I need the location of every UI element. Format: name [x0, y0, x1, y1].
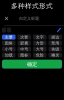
button[interactable]: 中号 — [17, 47, 31, 52]
button[interactable]: 图标 — [17, 53, 31, 58]
staticText: 加载 — [5, 53, 13, 57]
staticText: 确定 — [27, 61, 37, 67]
button[interactable]: Edit — [56, 27, 62, 33]
staticText: 禁用 — [51, 41, 59, 45]
staticText: 危险 — [36, 53, 44, 57]
button[interactable]: 大号 — [33, 47, 46, 52]
button[interactable]: 小号 — [2, 47, 15, 52]
button[interactable]: 描边 — [48, 35, 62, 40]
staticText: 文字 — [36, 35, 44, 39]
staticText: 次要 — [20, 35, 28, 39]
button[interactable]: 圆角 — [2, 41, 15, 46]
staticText: 方形 — [36, 41, 44, 45]
button[interactable]: Tag — [7, 28, 11, 33]
staticText: 大号 — [36, 47, 44, 51]
staticText: 胶囊 — [20, 41, 28, 45]
staticText: 中号 — [20, 47, 28, 51]
button[interactable]: 加载 — [2, 53, 15, 58]
staticText: 多种样式形式 — [11, 2, 53, 10]
button[interactable]: 确定 — [2, 60, 62, 69]
button[interactable]: 胶囊 — [17, 41, 31, 46]
staticText: 小号 — [5, 47, 13, 51]
staticText: 幽灵 — [51, 53, 59, 57]
staticText: 块级 — [51, 47, 59, 51]
staticText: 自定义标题 — [19, 16, 39, 21]
staticText: 圆角 — [5, 41, 13, 45]
button[interactable]: Close — [4, 16, 9, 21]
button[interactable]: 主要 — [2, 35, 15, 40]
button[interactable]: 块级 — [48, 47, 62, 52]
staticText: 图标 — [20, 53, 28, 57]
button[interactable]: 禁用 — [48, 41, 62, 46]
button[interactable]: 文字 — [33, 35, 46, 40]
button[interactable]: 次要 — [17, 35, 31, 40]
staticText: 主要 — [5, 35, 13, 39]
button[interactable]: 危险 — [33, 53, 46, 58]
button[interactable]: Tag — [2, 28, 6, 33]
button[interactable]: 幽灵 — [48, 53, 62, 58]
button[interactable]: 方形 — [33, 41, 46, 46]
staticText: 描边 — [51, 35, 59, 39]
